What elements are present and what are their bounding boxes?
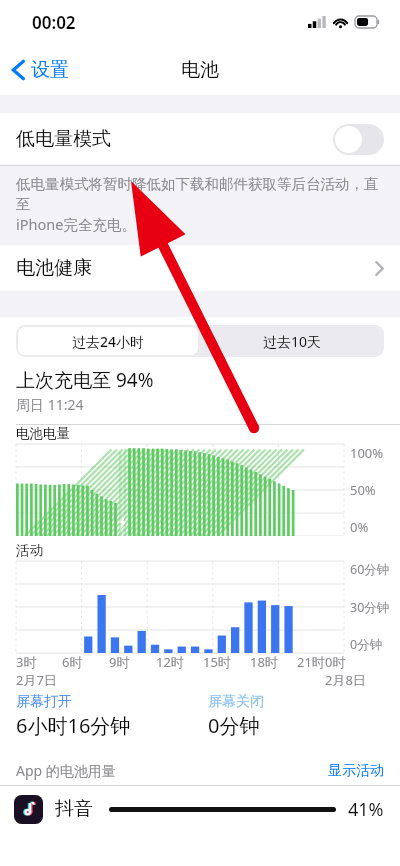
staticText: 屏幕打开	[16, 693, 72, 711]
staticText: 电池	[181, 58, 219, 82]
staticText: 0分钟	[350, 636, 383, 653]
staticText: 50%	[350, 481, 376, 499]
staticText: 上次充电至 94%	[16, 367, 154, 393]
staticText: 电池电量	[16, 425, 70, 442]
staticText: 2月8日	[325, 671, 366, 689]
staticText: 电池健康	[16, 256, 92, 280]
staticText: 0%	[350, 518, 369, 536]
staticText: 显示活动	[328, 762, 384, 780]
button[interactable]: 过去24小时	[18, 327, 198, 355]
staticText: 100%	[350, 444, 384, 462]
staticText: 18时	[250, 653, 278, 671]
staticText: 过去10天	[263, 332, 322, 351]
button[interactable]: 过去10天	[202, 327, 382, 355]
button[interactable]: 抖音	[0, 786, 400, 832]
button[interactable]: Low Power Mode toggle	[333, 124, 384, 155]
staticText: 设置	[31, 58, 69, 82]
staticText: 低电量模式	[16, 127, 111, 151]
staticText: 2月7日	[16, 671, 57, 689]
staticText: 6时	[62, 653, 83, 671]
staticText: 抖音	[55, 797, 93, 821]
staticText: 0分钟	[208, 712, 260, 739]
staticText: 周日 11:24	[16, 395, 84, 414]
staticText: 60分钟	[350, 561, 390, 578]
staticText: 00:02	[32, 11, 76, 34]
staticText: 过去24小时	[72, 332, 145, 351]
staticText: 3时	[16, 653, 37, 671]
staticText: 0时	[325, 653, 346, 671]
staticText: 41%	[348, 797, 384, 822]
staticText: 9时	[109, 653, 130, 671]
staticText: 30分钟	[350, 599, 390, 616]
staticText: 屏幕关闭	[208, 693, 264, 711]
staticText: 12时	[156, 653, 184, 671]
staticText: 15时	[203, 653, 231, 671]
staticText: App 的电池用量	[16, 761, 116, 780]
button[interactable]: 电池健康	[0, 245, 400, 291]
button[interactable]: 设置	[8, 52, 73, 88]
button[interactable]: 显示活动	[328, 762, 384, 780]
staticText: 21时	[297, 653, 325, 671]
button[interactable]: 低电量模式	[0, 113, 400, 165]
staticText: 活动	[16, 542, 43, 559]
staticText: 低电量模式将暂时降低如下载和邮件获取等后台活动，直至 iPhone完全充电。	[16, 175, 386, 234]
staticText: 6小时16分钟	[16, 712, 131, 739]
